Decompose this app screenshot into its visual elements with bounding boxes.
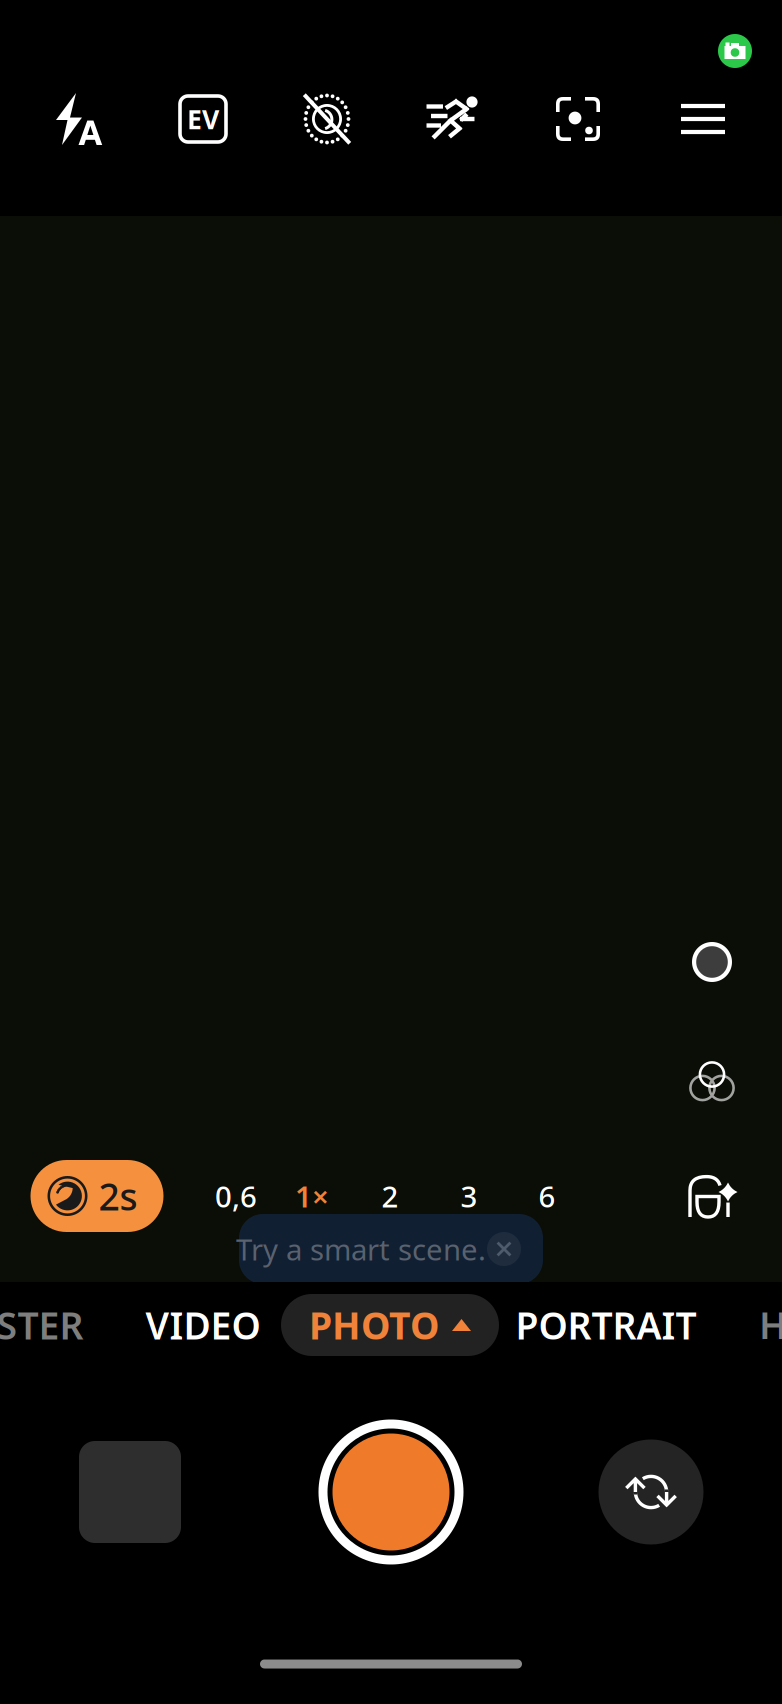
- button[interactable]: Switch camera: [583, 1424, 719, 1560]
- button[interactable]: 0,6: [205, 1173, 267, 1219]
- staticText: Try a smart scene.: [236, 1229, 486, 1268]
- button[interactable]: Night mode off: [271, 71, 383, 167]
- button[interactable]: Camera in use: [710, 26, 760, 76]
- button[interactable]: Filters: [670, 1039, 754, 1123]
- staticText: 0,6: [215, 1176, 257, 1215]
- staticText: 3: [460, 1176, 477, 1215]
- staticText: EV: [187, 101, 219, 137]
- button[interactable]: H: [753, 1293, 782, 1357]
- staticText: VIDEO: [145, 1300, 260, 1350]
- button[interactable]: VIDEO: [133, 1293, 273, 1357]
- staticText: PHOTO: [309, 1300, 440, 1350]
- button[interactable]: 3: [438, 1173, 500, 1219]
- button[interactable]: 1×: [281, 1173, 343, 1219]
- staticText: 2: [381, 1176, 398, 1215]
- staticText: 1×: [295, 1176, 329, 1215]
- button[interactable]: 2: [359, 1173, 421, 1219]
- button[interactable]: STER: [0, 1293, 88, 1357]
- staticText: 6: [538, 1176, 555, 1215]
- button[interactable]: PHOTO: [281, 1294, 499, 1356]
- staticText: H: [759, 1300, 782, 1350]
- button[interactable]: Photo gallery: [62, 1424, 198, 1560]
- button[interactable]: Master exposure: [670, 920, 754, 1004]
- button[interactable]: Take photo: [309, 1410, 473, 1574]
- button[interactable]: Dismiss tip: [482, 1227, 526, 1271]
- button[interactable]: Beauty effects: [670, 1156, 754, 1240]
- button[interactable]: Smart scene detection: [522, 71, 634, 167]
- staticText: 2s: [98, 1171, 137, 1221]
- button[interactable]: Night mode, 2 seconds: [30, 1160, 163, 1232]
- button[interactable]: Exposure compensation: [147, 71, 259, 167]
- button[interactable]: 6: [516, 1173, 578, 1219]
- staticText: PORTRAIT: [515, 1300, 696, 1350]
- button[interactable]: Action mode: [397, 71, 509, 167]
- button[interactable]: Flash auto: [22, 71, 134, 167]
- button[interactable]: PORTRAIT: [506, 1293, 706, 1357]
- staticText: STER: [0, 1300, 83, 1350]
- button[interactable]: More settings: [647, 71, 759, 167]
